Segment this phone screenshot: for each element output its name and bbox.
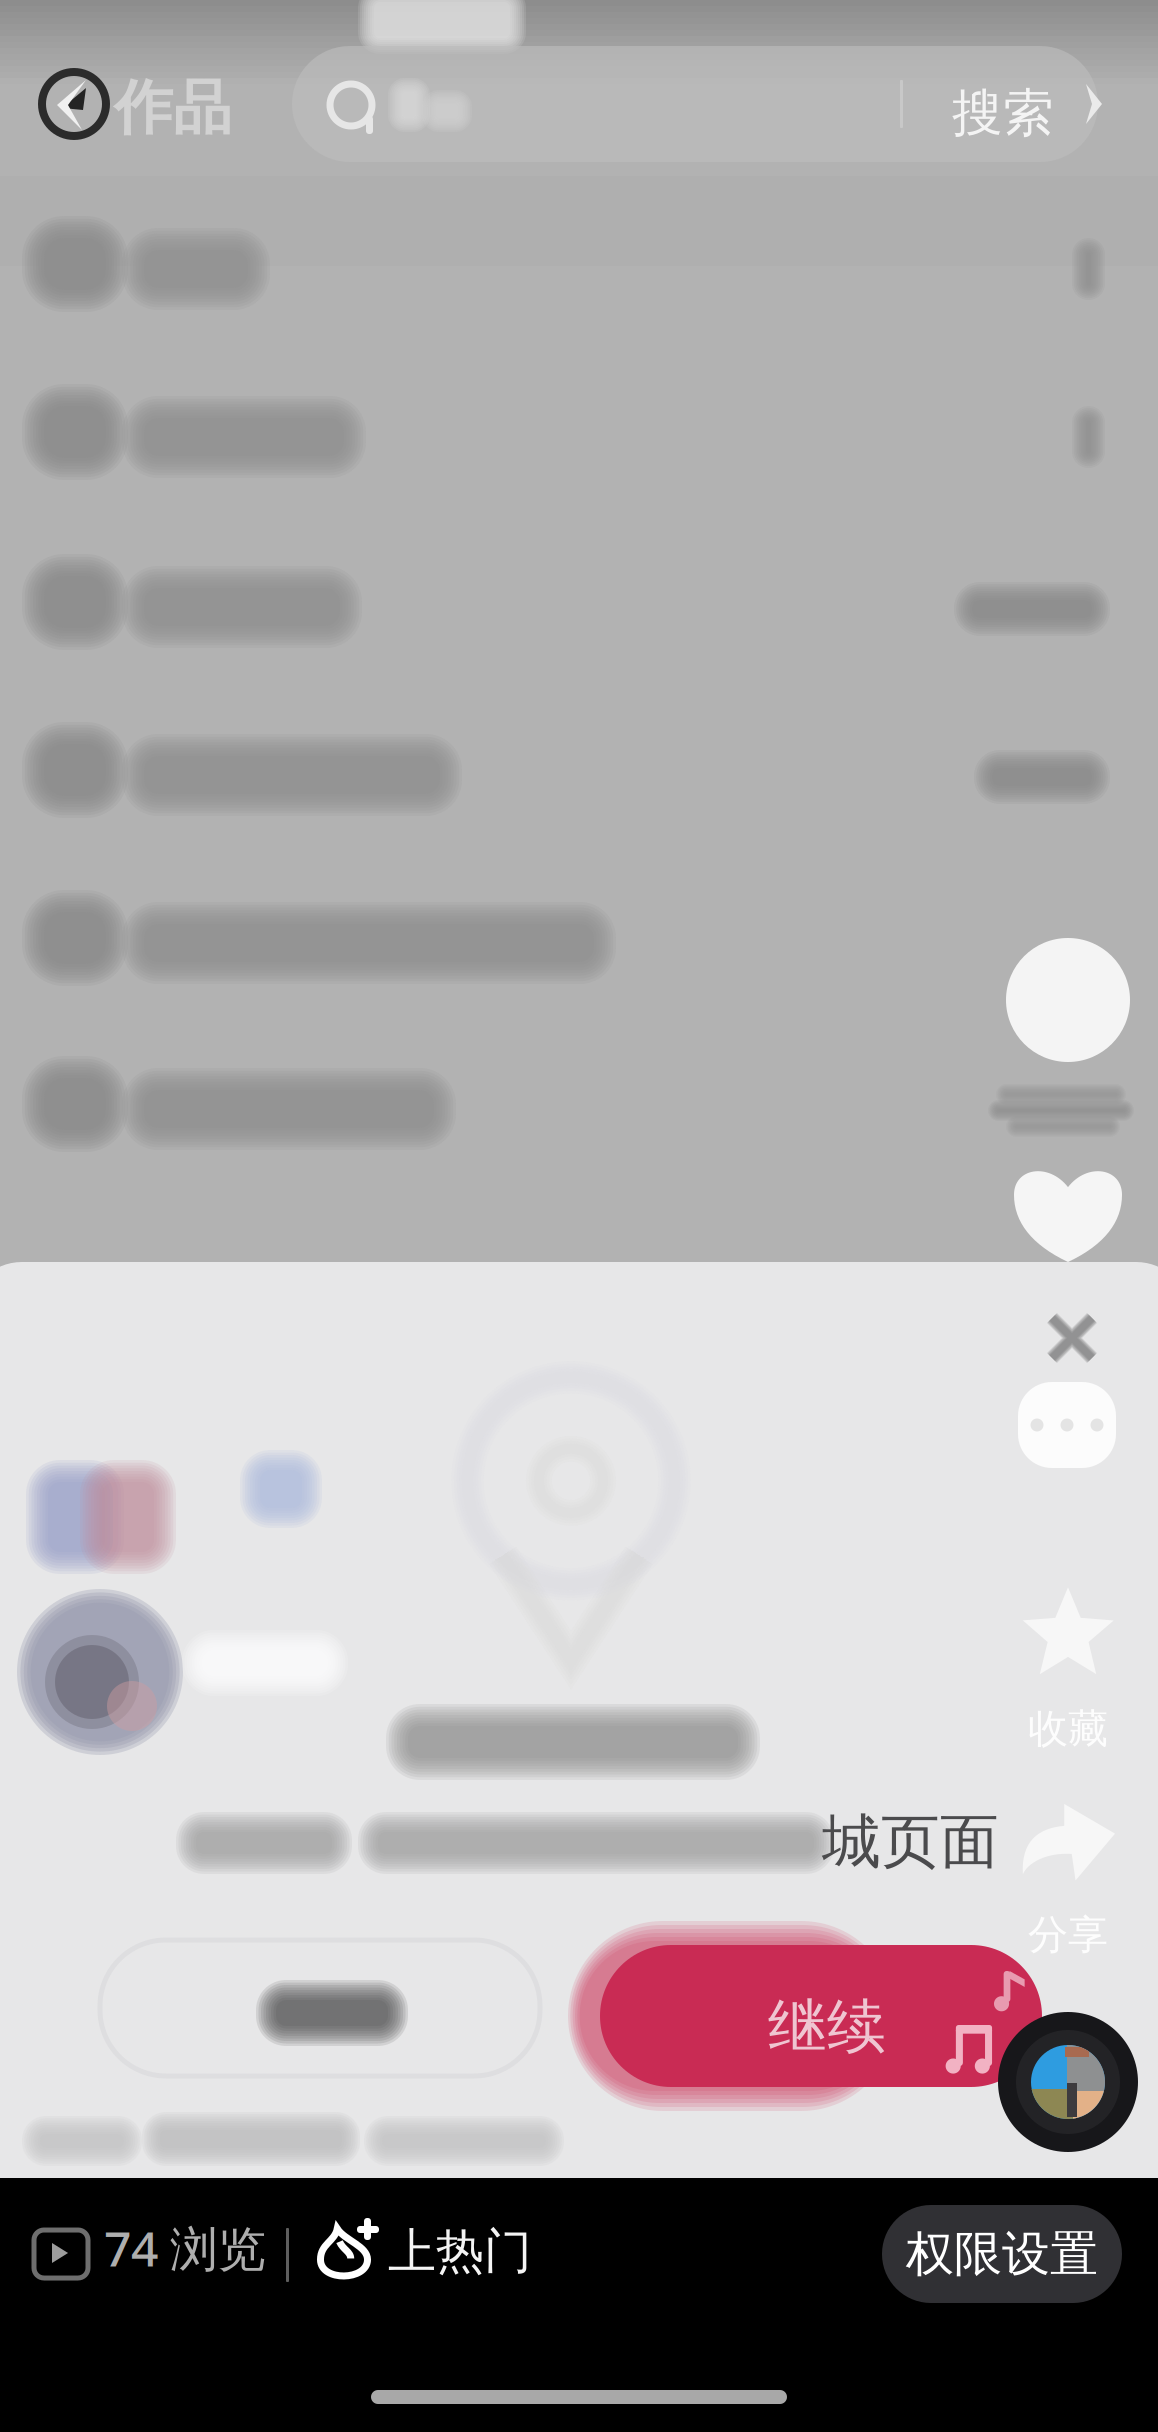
staticText: 上热门 bbox=[388, 2222, 532, 2281]
staticText: 搜索 bbox=[952, 82, 1054, 144]
staticText: 74 浏览 bbox=[104, 2216, 266, 2280]
staticText: 城页面 bbox=[822, 1806, 999, 1878]
button[interactable]: Like bbox=[1014, 1166, 1122, 1262]
staticText: 权限设置 bbox=[906, 2224, 1098, 2283]
staticText: 作品 bbox=[114, 72, 232, 144]
button[interactable]: 分享 bbox=[993, 1806, 1143, 1956]
button[interactable]: 权限设置 bbox=[882, 2205, 1122, 2303]
button[interactable]: Profile bbox=[1006, 938, 1130, 1062]
button[interactable]: Search bbox=[292, 46, 1098, 162]
button[interactable]: Comments bbox=[1018, 1382, 1116, 1468]
staticText: 分享 bbox=[1028, 1910, 1108, 1959]
button[interactable]: Back bbox=[42, 72, 106, 136]
button[interactable]: Close bbox=[1046, 1312, 1098, 1364]
button[interactable]: Music bbox=[998, 2012, 1138, 2152]
button[interactable]: 收藏 bbox=[993, 1586, 1143, 1752]
staticText: 继续 bbox=[768, 1991, 886, 2063]
staticText: 收藏 bbox=[1028, 1704, 1108, 1753]
button[interactable]: 继续 bbox=[600, 1945, 1042, 2087]
